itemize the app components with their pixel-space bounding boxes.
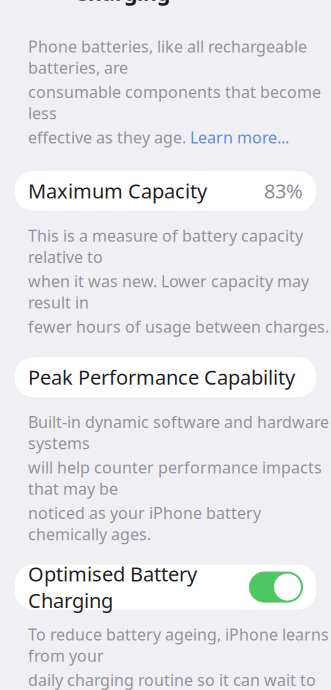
staticText: Learn more... [190, 127, 289, 148]
button[interactable]: Optimised Battery Charging [15, 565, 316, 610]
button[interactable]: Peak Performance Capability [15, 357, 316, 397]
staticText: Battery Health & Charging [74, 0, 253, 7]
staticText: will help counter performance impacts th… [28, 457, 322, 499]
staticText: when it was new. Lower capacity may resu… [28, 270, 309, 313]
staticText: Optimised Battery Charging [28, 560, 197, 614]
button[interactable]: Learn more... [190, 127, 289, 148]
staticText: effective as they age. [28, 127, 190, 148]
staticText: 83% [264, 178, 303, 204]
staticText: noticed as your iPhone battery chemicall… [28, 502, 261, 545]
staticText: Maximum Capacity [28, 178, 207, 204]
staticText: Phone batteries, like all rechargeable b… [28, 36, 307, 78]
staticText: fewer hours of usage between charges. [28, 316, 329, 337]
staticText: Built-in dynamic software and hardware s… [28, 411, 329, 454]
staticText: To reduce battery ageing, iPhone learns … [28, 624, 329, 666]
staticText: Peak Performance Capability [28, 364, 295, 390]
staticText: consumable components that become less [28, 81, 321, 124]
staticText: daily charging routine so it can wait to… [28, 669, 316, 690]
staticText: This is a measure of battery capacity re… [28, 225, 303, 267]
